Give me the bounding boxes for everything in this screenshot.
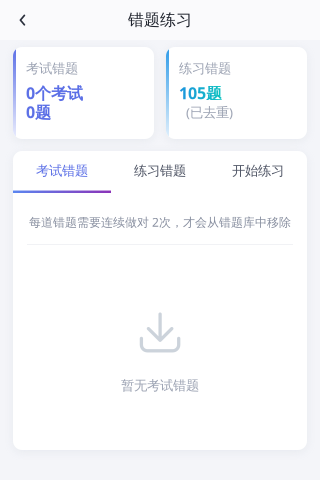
staticText: 练习错题: [134, 163, 186, 179]
button[interactable]: 返回: [0, 0, 45, 40]
button[interactable]: 考试错题: [13, 151, 111, 193]
button[interactable]: 考试错题: [13, 47, 154, 139]
staticText: 练习错题: [179, 60, 231, 77]
button[interactable]: 练习错题: [166, 47, 307, 139]
staticText: 考试错题: [36, 163, 88, 179]
staticText: 每道错题需要连续做对 2次，才会从错题库中移除: [29, 214, 291, 230]
staticText: (已去重): [186, 103, 233, 121]
staticText: 错题练习: [128, 10, 192, 30]
button[interactable]: 开始练习: [209, 151, 307, 193]
button[interactable]: 练习错题: [111, 151, 209, 193]
staticText: 0个考试: [26, 82, 83, 104]
staticText: 0题: [26, 101, 51, 123]
staticText: 开始练习: [232, 163, 284, 179]
staticText: 考试错题: [26, 60, 78, 77]
staticText: 暂无考试错题: [121, 377, 199, 394]
